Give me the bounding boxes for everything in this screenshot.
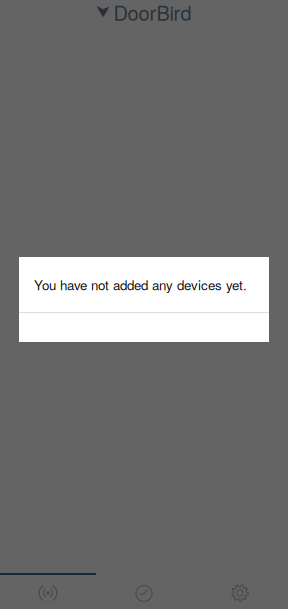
button[interactable]: Devices — [0, 573, 96, 609]
button[interactable]: History — [96, 573, 192, 609]
staticText: DoorBird — [113, 0, 191, 26]
button[interactable]: Settings — [192, 573, 288, 609]
staticText: You have not added any devices yet. — [34, 275, 247, 294]
